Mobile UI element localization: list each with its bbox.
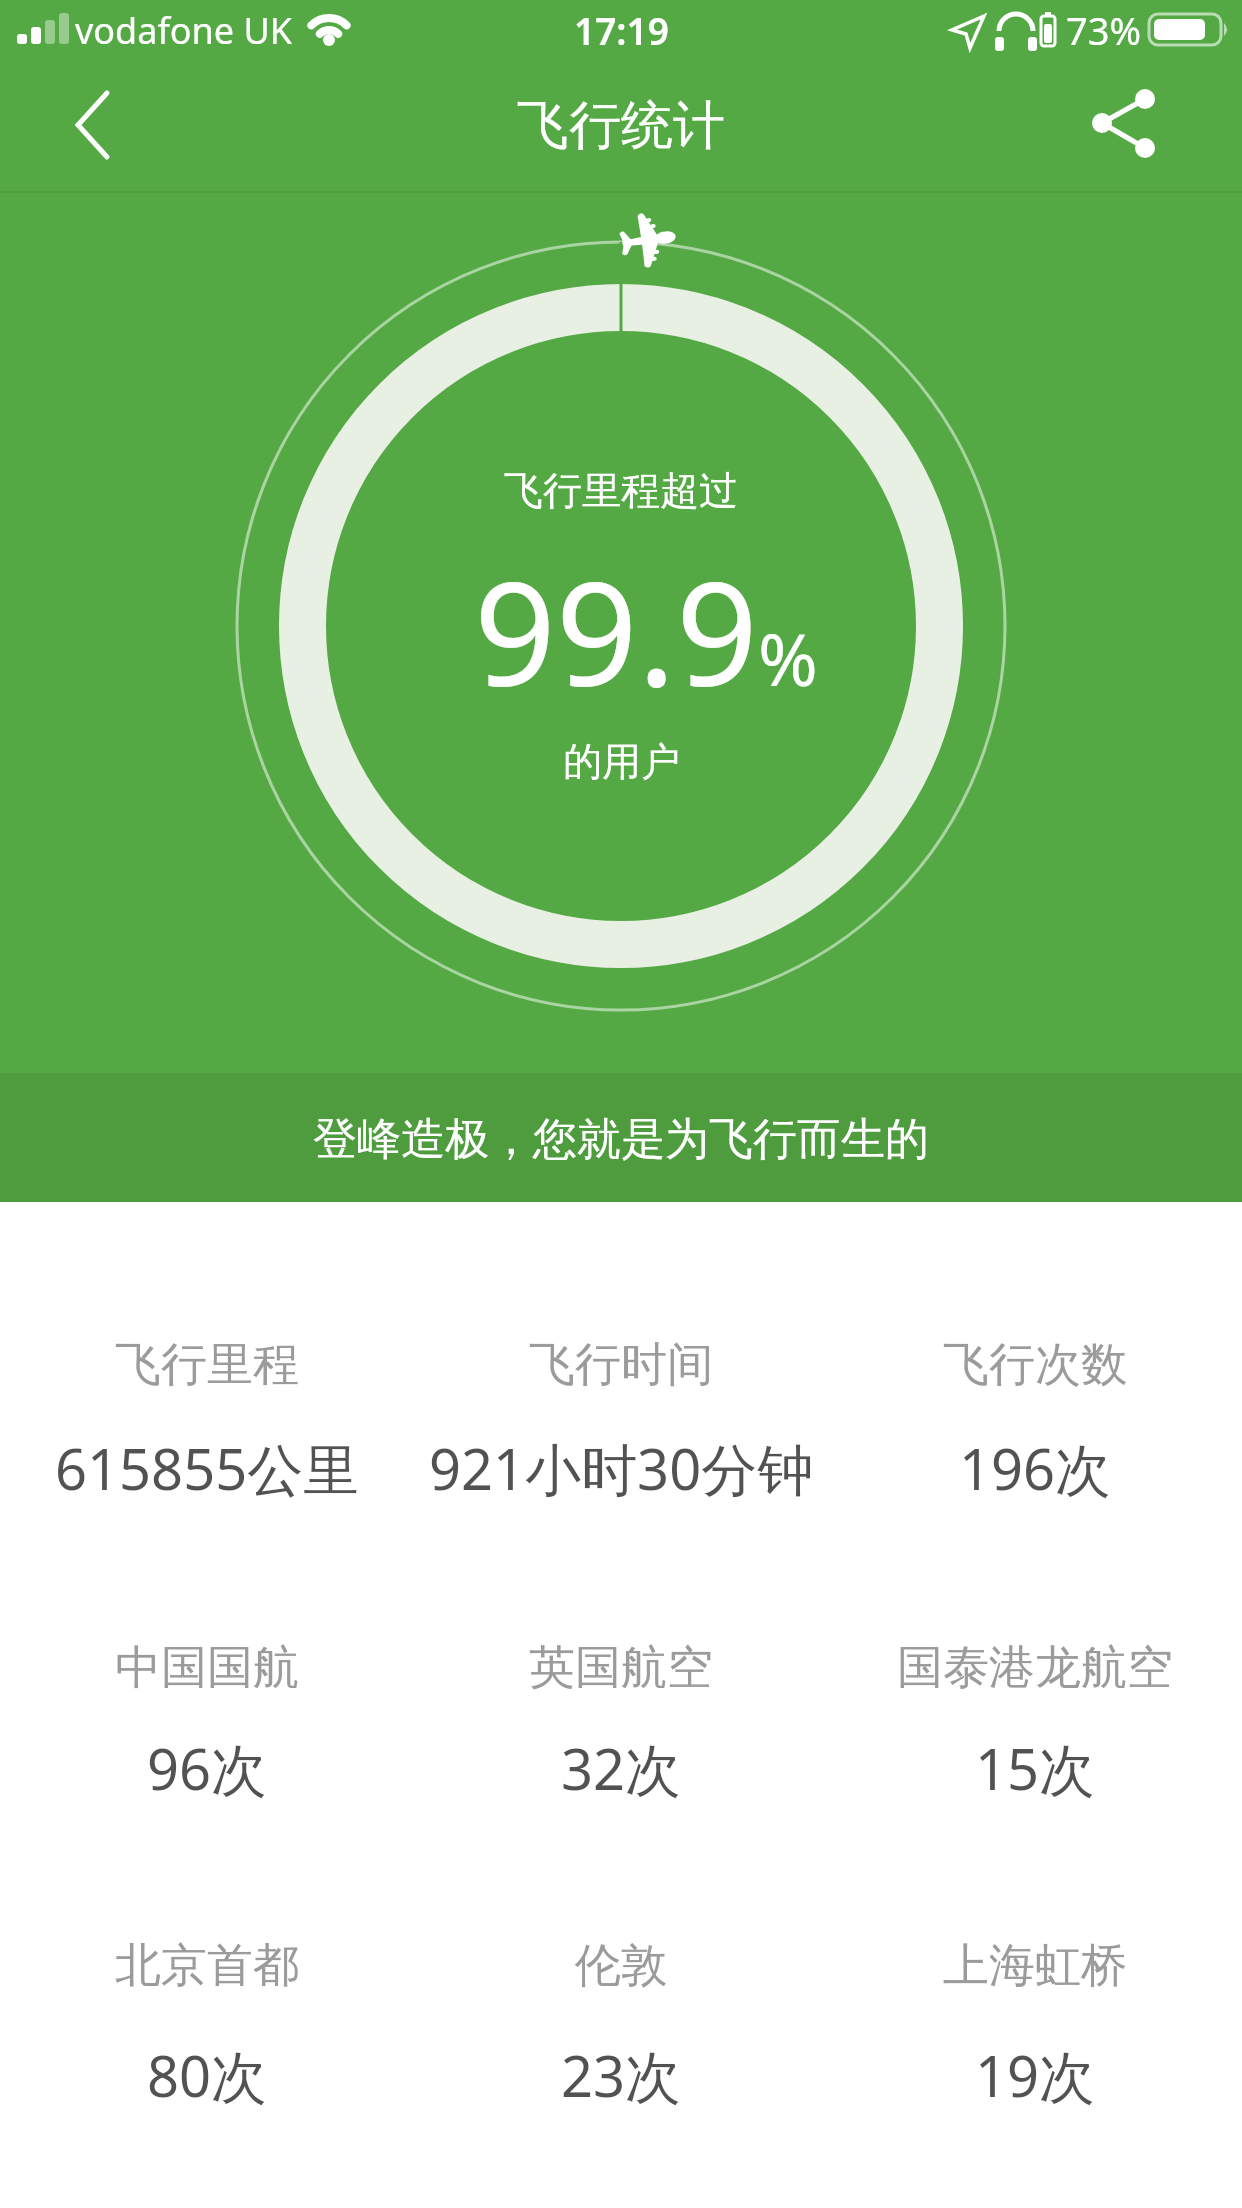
staticText: 99.9 <box>474 533 758 728</box>
staticText: 32次 <box>561 1730 682 1806</box>
staticText: 飞行里程 <box>115 1336 299 1394</box>
staticText: 登峰造极，您就是为飞行而生的 <box>313 1112 929 1167</box>
staticText: 的用户 <box>563 737 680 786</box>
staticText: 23次 <box>561 2037 682 2113</box>
button[interactable] <box>40 80 150 176</box>
staticText: 英国航空 <box>529 1639 713 1697</box>
button[interactable] <box>1064 72 1184 178</box>
staticText: vodafone UK <box>75 6 293 55</box>
staticText: 飞行里程超过 <box>504 466 738 515</box>
staticText: 飞行时间 <box>529 1336 713 1394</box>
staticText: 19次 <box>975 2037 1096 2113</box>
staticText: 上海虹桥 <box>943 1937 1127 1995</box>
staticText: 飞行统计 <box>517 93 725 159</box>
staticText: 80次 <box>147 2037 268 2113</box>
staticText: 73% <box>1066 4 1142 56</box>
staticText: % <box>758 609 818 707</box>
staticText: 国泰港龙航空 <box>897 1639 1173 1697</box>
staticText: 615855公里 <box>55 1430 360 1506</box>
staticText: 921小时30分钟 <box>429 1430 814 1506</box>
staticText: 北京首都 <box>115 1937 299 1995</box>
staticText: 17:19 <box>574 5 669 55</box>
staticText: 96次 <box>147 1730 268 1806</box>
staticText: 中国国航 <box>115 1639 299 1697</box>
staticText: 196次 <box>959 1430 1112 1506</box>
staticText: 飞行次数 <box>943 1336 1127 1394</box>
staticText: 伦敦 <box>575 1937 667 1995</box>
staticText: 15次 <box>975 1730 1096 1806</box>
